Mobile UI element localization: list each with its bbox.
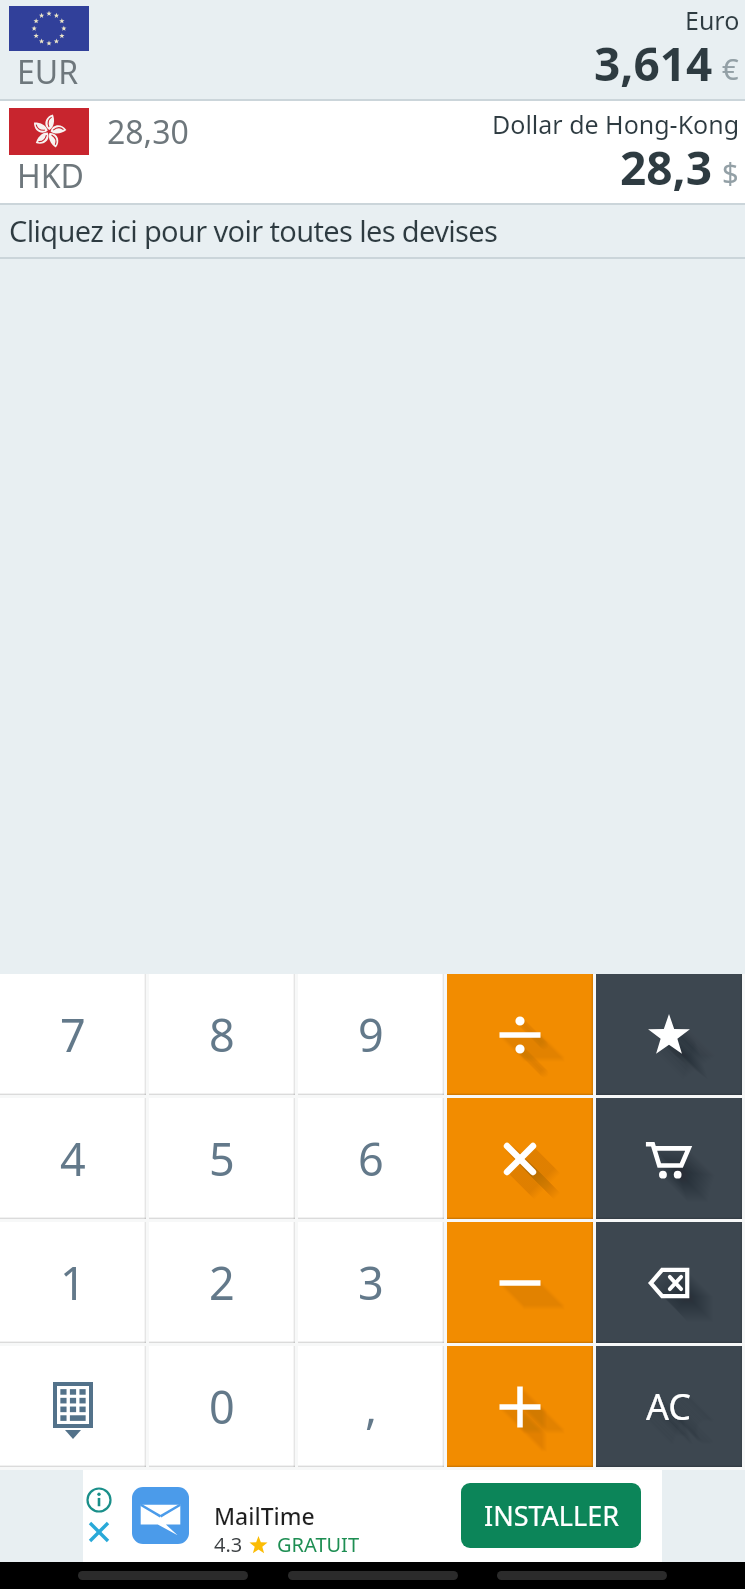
button[interactable]: Shopping cart	[596, 1098, 742, 1219]
staticText: 4	[60, 1128, 86, 1189]
button[interactable]: 0	[149, 1346, 295, 1467]
staticText: 8	[209, 1004, 235, 1065]
button[interactable]: 7	[0, 974, 146, 1095]
staticText: AC	[648, 1384, 694, 1433]
staticText: 3,614	[594, 32, 713, 95]
staticText: Cliquez ici pour voir toutes les devises	[9, 211, 498, 250]
staticText: AC	[670, 1406, 716, 1455]
staticText: AC	[652, 1388, 698, 1437]
staticText: AC	[669, 1405, 715, 1454]
button[interactable]: Backspace	[596, 1222, 742, 1343]
button[interactable]: Multiply	[447, 1098, 593, 1219]
button[interactable]: INSTALLER	[461, 1483, 641, 1548]
staticText: AC	[647, 1383, 693, 1432]
staticText: ,	[365, 1376, 378, 1437]
button[interactable]: Keypad	[0, 1346, 146, 1467]
staticText: AC	[663, 1399, 709, 1448]
staticText: 7	[60, 1004, 86, 1065]
staticText: 1	[60, 1252, 86, 1313]
staticText: AC	[660, 1396, 706, 1445]
button[interactable]: EUR	[0, 0, 745, 99]
staticText: AC	[649, 1385, 695, 1434]
button[interactable]: Add	[447, 1346, 593, 1467]
staticText: Dollar de Hong-Kong	[492, 107, 740, 141]
staticText: 3	[358, 1252, 384, 1313]
staticText: AC	[667, 1403, 713, 1452]
staticText: AC	[653, 1389, 699, 1438]
button[interactable]: Cliquez ici pour voir toutes les devises	[0, 205, 745, 257]
staticText: AC	[659, 1395, 705, 1444]
button[interactable]: 9	[298, 974, 444, 1095]
staticText: EUR	[17, 50, 79, 94]
button[interactable]: 8	[149, 974, 295, 1095]
staticText: MailTime	[214, 1500, 315, 1531]
button[interactable]: 3	[298, 1222, 444, 1343]
staticText: €	[722, 49, 739, 88]
staticText: 28,30	[107, 110, 189, 154]
staticText: AC	[655, 1391, 701, 1440]
button[interactable]: Close ad	[86, 1519, 112, 1545]
button[interactable]: Favourites	[596, 974, 742, 1095]
staticText: AC	[646, 1382, 692, 1431]
staticText: 2	[209, 1252, 235, 1313]
staticText: AC	[662, 1398, 708, 1447]
staticText: AC	[654, 1390, 700, 1439]
staticText: AC	[661, 1397, 707, 1446]
button[interactable]: Ad information	[86, 1487, 112, 1513]
staticText: AC	[656, 1392, 702, 1441]
button[interactable]: Subtract	[447, 1222, 593, 1343]
staticText: $	[722, 153, 739, 192]
button[interactable]: AC	[596, 1346, 742, 1467]
staticText: AC	[651, 1387, 697, 1436]
staticText: GRATUIT	[277, 1531, 360, 1558]
button[interactable]: HKD	[0, 101, 745, 203]
staticText: AC	[650, 1386, 696, 1435]
staticText: AC	[665, 1401, 711, 1450]
button[interactable]: Divide	[447, 974, 593, 1095]
button[interactable]: 4	[0, 1098, 146, 1219]
staticText: AC	[668, 1404, 714, 1453]
staticText: 9	[358, 1004, 384, 1065]
staticText: 4.3	[214, 1531, 243, 1558]
staticText: AC	[657, 1393, 703, 1442]
staticText: Euro	[685, 3, 740, 37]
staticText: HKD	[17, 154, 84, 198]
staticText: INSTALLER	[484, 1497, 619, 1534]
staticText: AC	[664, 1400, 710, 1449]
staticText: AC	[666, 1402, 712, 1451]
staticText: 6	[358, 1128, 384, 1189]
staticText: 5	[209, 1128, 235, 1189]
staticText: 0	[209, 1376, 235, 1437]
button[interactable]: 6	[298, 1098, 444, 1219]
button[interactable]: ,	[298, 1346, 444, 1467]
staticText: AC	[658, 1394, 704, 1443]
staticText: 28,3	[620, 136, 713, 199]
button[interactable]: 2	[149, 1222, 295, 1343]
button[interactable]: 5	[149, 1098, 295, 1219]
button[interactable]: 1	[0, 1222, 146, 1343]
